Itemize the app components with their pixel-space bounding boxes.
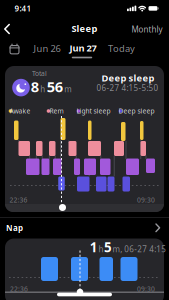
staticText: 9:41	[14, 3, 31, 14]
button[interactable]: Nap	[0, 221, 169, 235]
staticText: m	[64, 84, 71, 94]
staticText: h	[40, 84, 45, 94]
button[interactable]	[0, 23, 14, 35]
staticText: 22:36	[10, 195, 28, 204]
button[interactable]	[5, 238, 164, 300]
button[interactable]: Jun 26	[33, 42, 60, 55]
staticText: h	[98, 244, 103, 254]
staticText: Total	[32, 69, 47, 78]
staticText: Jun 26	[33, 42, 60, 55]
staticText: Deep sleep	[101, 72, 154, 84]
button[interactable]: Jun 27	[69, 42, 96, 54]
button[interactable]: Monthly	[131, 24, 162, 35]
button[interactable]: Today	[108, 42, 135, 55]
staticText: Rem	[49, 107, 63, 115]
staticText: 22:36	[10, 285, 28, 293]
staticText: 09:30	[137, 195, 155, 204]
button[interactable]	[59, 204, 66, 211]
staticText: 8	[31, 77, 39, 96]
staticText: Light sleep	[76, 107, 110, 115]
button[interactable]	[9, 43, 20, 54]
staticText: Awake	[9, 107, 30, 115]
staticText: 1	[90, 238, 98, 256]
staticText: Today	[108, 42, 135, 55]
staticText: Deep sleep	[118, 107, 154, 115]
button[interactable]	[77, 289, 83, 295]
staticText: 06-27 4:15-5:50	[96, 82, 158, 93]
staticText: 56	[47, 77, 63, 96]
staticText: 09:30	[137, 285, 155, 293]
staticText: Jun 27	[69, 42, 96, 54]
staticText: Monthly	[131, 24, 162, 35]
staticText: m	[113, 244, 120, 254]
staticText: Sleep	[71, 22, 97, 35]
staticText: Nap	[6, 223, 23, 233]
button[interactable]	[5, 66, 164, 212]
staticText: , 06-27 4:15	[120, 244, 166, 254]
staticText: 5	[104, 238, 112, 256]
